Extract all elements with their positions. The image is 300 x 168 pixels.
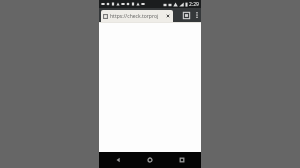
button[interactable]: https://check.torproj (101, 10, 173, 22)
button[interactable]: Recent apps (169, 152, 195, 168)
button[interactable]: More options (192, 8, 201, 22)
button[interactable]: Home (137, 152, 163, 168)
staticText: https://check.torproj (110, 13, 164, 20)
staticText: 2:29 (189, 1, 199, 8)
button[interactable]: Close tab (165, 13, 171, 19)
button[interactable]: Back (105, 152, 131, 168)
button[interactable]: Switch tabs (181, 8, 192, 22)
